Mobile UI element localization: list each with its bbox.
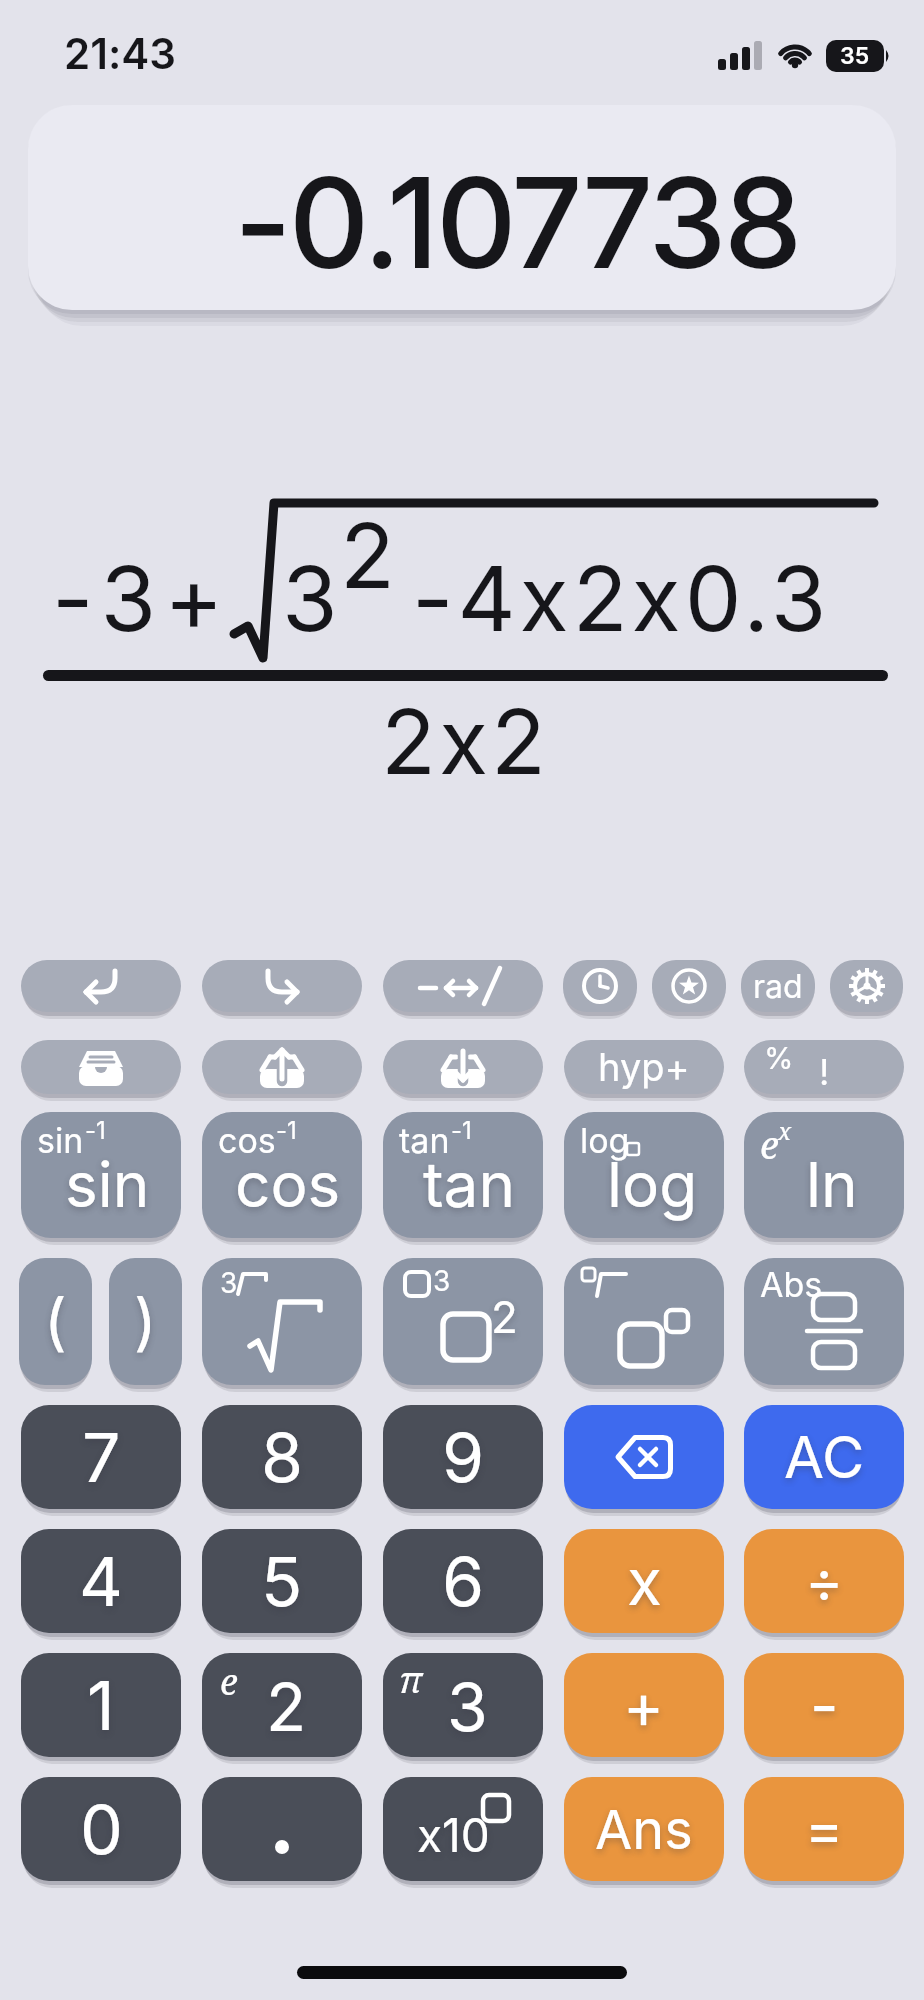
staticText: sin <box>37 1120 84 1161</box>
staticText: 0 <box>80 1788 123 1870</box>
staticText: x10 <box>417 1807 490 1863</box>
staticText: π <box>399 1655 423 1704</box>
button[interactable] <box>202 1777 362 1881</box>
button[interactable]: sin <box>21 1112 181 1238</box>
staticText: 3 <box>220 1266 238 1300</box>
button[interactable]: cos <box>202 1112 362 1238</box>
staticText: 2 <box>491 1290 518 1343</box>
staticText: 5 <box>261 1540 303 1622</box>
staticText: ! <box>819 1050 830 1094</box>
button[interactable]: 5 <box>202 1529 362 1633</box>
staticText: ln <box>806 1147 858 1222</box>
button[interactable]: 4 <box>21 1529 181 1633</box>
button[interactable]: AC <box>744 1405 904 1509</box>
button[interactable]: log <box>564 1112 724 1238</box>
button[interactable]: 7 <box>21 1405 181 1509</box>
staticText: 7 <box>82 1416 121 1498</box>
button[interactable]: + <box>564 1653 724 1757</box>
button[interactable]: x <box>564 1529 724 1633</box>
staticText: 35 <box>840 42 870 70</box>
button[interactable] <box>383 1040 543 1094</box>
button[interactable]: 3 <box>383 1653 543 1757</box>
staticText: Ans <box>595 1797 693 1862</box>
staticText: log <box>607 1147 698 1222</box>
staticText: tan <box>399 1120 450 1161</box>
staticText: 6 <box>442 1540 485 1622</box>
staticText: 3 <box>433 1264 451 1298</box>
staticText: 9 <box>442 1416 485 1498</box>
staticText: ) <box>134 1284 157 1359</box>
button[interactable]: = <box>744 1777 904 1881</box>
button[interactable]: 0 <box>21 1777 181 1881</box>
button[interactable] <box>652 960 726 1012</box>
staticText: 8 <box>261 1416 304 1498</box>
button[interactable]: ) <box>109 1258 182 1385</box>
staticText: = <box>805 1794 844 1864</box>
staticText: cos <box>218 1120 276 1161</box>
staticText: Abs <box>760 1264 823 1305</box>
button[interactable]: 9 <box>383 1405 543 1509</box>
staticText: -1 <box>451 1116 472 1145</box>
staticText: -3+ <box>52 544 232 653</box>
staticText: - <box>810 1668 839 1743</box>
staticText: 2 <box>266 1667 307 1747</box>
staticText: 21:43 <box>64 28 177 79</box>
button[interactable]: % <box>744 1040 904 1094</box>
staticText: -4x2x0.3 <box>412 544 831 653</box>
staticText: x <box>778 1114 792 1147</box>
button[interactable] <box>202 960 362 1012</box>
button[interactable] <box>202 1040 362 1094</box>
button[interactable]: 2 <box>202 1653 362 1757</box>
staticText: 2 <box>340 501 395 610</box>
staticText: rad <box>753 967 803 1006</box>
staticText: hyp+ <box>598 1044 690 1090</box>
button[interactable]: 3 <box>383 1258 543 1385</box>
button[interactable]: -0.107738 <box>28 105 896 310</box>
staticText: 3 <box>447 1667 488 1747</box>
button[interactable] <box>383 960 543 1012</box>
button[interactable]: 8 <box>202 1405 362 1509</box>
button[interactable]: ÷ <box>744 1529 904 1633</box>
staticText: e <box>220 1657 238 1706</box>
staticText: % <box>764 1040 794 1076</box>
button[interactable]: 3 <box>202 1258 362 1385</box>
button[interactable]: tan <box>383 1112 543 1238</box>
staticText: sin <box>65 1147 150 1222</box>
button[interactable]: Ans <box>564 1777 724 1881</box>
button[interactable] <box>563 960 637 1012</box>
button[interactable]: - <box>744 1653 904 1757</box>
staticText: log <box>580 1120 630 1161</box>
button[interactable]: ( <box>19 1258 92 1385</box>
button[interactable] <box>830 960 903 1012</box>
staticText: 4 <box>79 1540 123 1622</box>
button[interactable] <box>564 1405 724 1509</box>
staticText: 1 <box>87 1664 115 1746</box>
staticText: tan <box>423 1147 516 1222</box>
staticText: ÷ <box>805 1546 844 1616</box>
staticText: ( <box>44 1284 67 1359</box>
staticText: AC <box>784 1422 865 1492</box>
button[interactable]: hyp+ <box>564 1040 724 1094</box>
button[interactable]: ln <box>744 1112 904 1238</box>
staticText: e <box>760 1118 779 1170</box>
staticText: -1 <box>85 1116 106 1145</box>
staticText: cos <box>235 1147 341 1222</box>
staticText: 3 <box>282 544 338 653</box>
staticText: x <box>627 1543 662 1620</box>
staticText: -0.107738 <box>234 147 800 298</box>
staticText: -1 <box>276 1116 297 1145</box>
button[interactable]: Abs <box>744 1258 904 1385</box>
button[interactable] <box>21 1040 181 1094</box>
staticText: + <box>623 1668 665 1743</box>
button[interactable]: 6 <box>383 1529 543 1633</box>
button[interactable]: 1 <box>21 1653 181 1757</box>
staticText: 2x2 <box>381 687 549 796</box>
button[interactable]: x10 <box>383 1777 543 1881</box>
button[interactable] <box>564 1258 724 1385</box>
button[interactable]: rad <box>741 960 815 1012</box>
button[interactable] <box>21 960 181 1012</box>
